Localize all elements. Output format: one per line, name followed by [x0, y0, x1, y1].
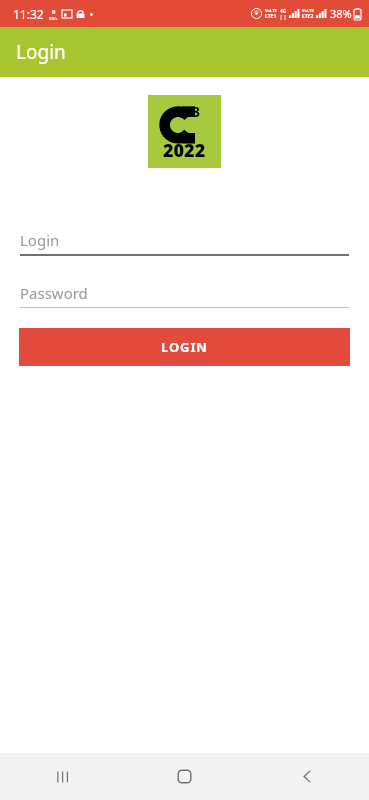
staticText: Login: [20, 230, 60, 250]
button[interactable]: LOGIN: [19, 328, 350, 366]
staticText: VoLTE: [302, 8, 314, 13]
staticText: 11:32: [13, 6, 44, 22]
button[interactable]: Home: [123, 753, 246, 800]
button[interactable]: Password: [20, 279, 349, 308]
staticText: KB/s: [49, 16, 58, 21]
staticText: LTE1: [265, 13, 277, 20]
button[interactable]: Login: [20, 226, 349, 256]
button[interactable]: Recent apps: [0, 753, 123, 800]
staticText: Login: [16, 39, 66, 65]
staticText: LOGIN: [161, 338, 208, 356]
staticText: LTE2: [302, 13, 314, 20]
staticText: 4G: [280, 8, 287, 15]
staticText: Password: [20, 283, 88, 303]
staticText: 38%: [330, 6, 352, 21]
staticText: 2022: [163, 138, 206, 163]
staticText: 9: [52, 8, 56, 16]
staticText: VoLTE: [265, 8, 277, 13]
staticText: 3: [192, 102, 201, 121]
button[interactable]: Back: [246, 753, 369, 800]
